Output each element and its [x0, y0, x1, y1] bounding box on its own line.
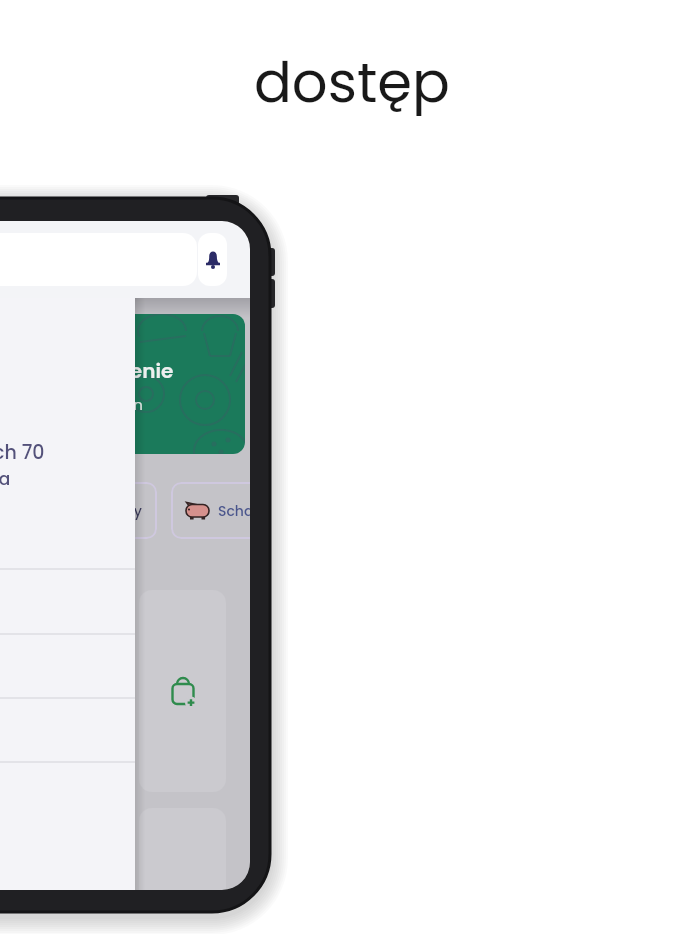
button[interactable]: Smaczne jedzenie	[0, 314, 245, 454]
staticText: Zamów on	[64, 394, 143, 412]
staticText: dostęp	[254, 43, 450, 121]
staticText: Warszawa	[0, 467, 11, 491]
staticText: Świętych 70	[0, 439, 45, 466]
button[interactable]: Burgery	[0, 482, 157, 539]
button[interactable]	[198, 233, 227, 286]
button[interactable]	[139, 590, 226, 792]
staticText: Smaczne jedzenie	[0, 357, 174, 385]
staticText: Burgery	[87, 501, 142, 521]
staticText: Schabowy	[218, 501, 250, 521]
button[interactable]: Schabowy	[171, 482, 250, 539]
